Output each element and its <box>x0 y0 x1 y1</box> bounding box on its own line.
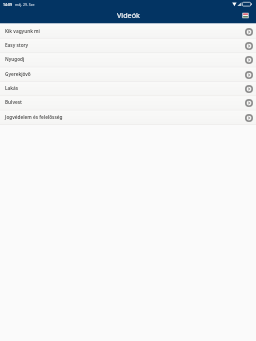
staticText: Kik vagyunk mi <box>5 28 40 34</box>
button[interactable]: Nyelv valasztas <box>239 9 251 21</box>
button[interactable]: Bulvest <box>0 96 256 109</box>
button[interactable]: Jogvédelem és felelősség <box>0 111 256 124</box>
staticText: Gyerekjövő <box>5 71 31 77</box>
button[interactable]: Easy story <box>0 39 256 52</box>
staticText: máj. 29. Sze <box>15 2 35 7</box>
staticText: Jogvédelem és felelősség <box>5 114 63 120</box>
button[interactable]: Kik vagyunk mi <box>0 25 256 38</box>
button[interactable]: Nyugodj <box>0 53 256 66</box>
button[interactable]: Gyerekjövő <box>0 68 256 81</box>
staticText: Videók <box>117 10 140 20</box>
staticText: Lakás <box>5 85 19 91</box>
staticText: Nyugodj <box>5 56 25 62</box>
button[interactable]: Lakás <box>0 82 256 95</box>
staticText: 14:09 <box>3 2 12 7</box>
staticText: Bulvest <box>5 99 22 105</box>
staticText: Easy story <box>5 42 29 48</box>
